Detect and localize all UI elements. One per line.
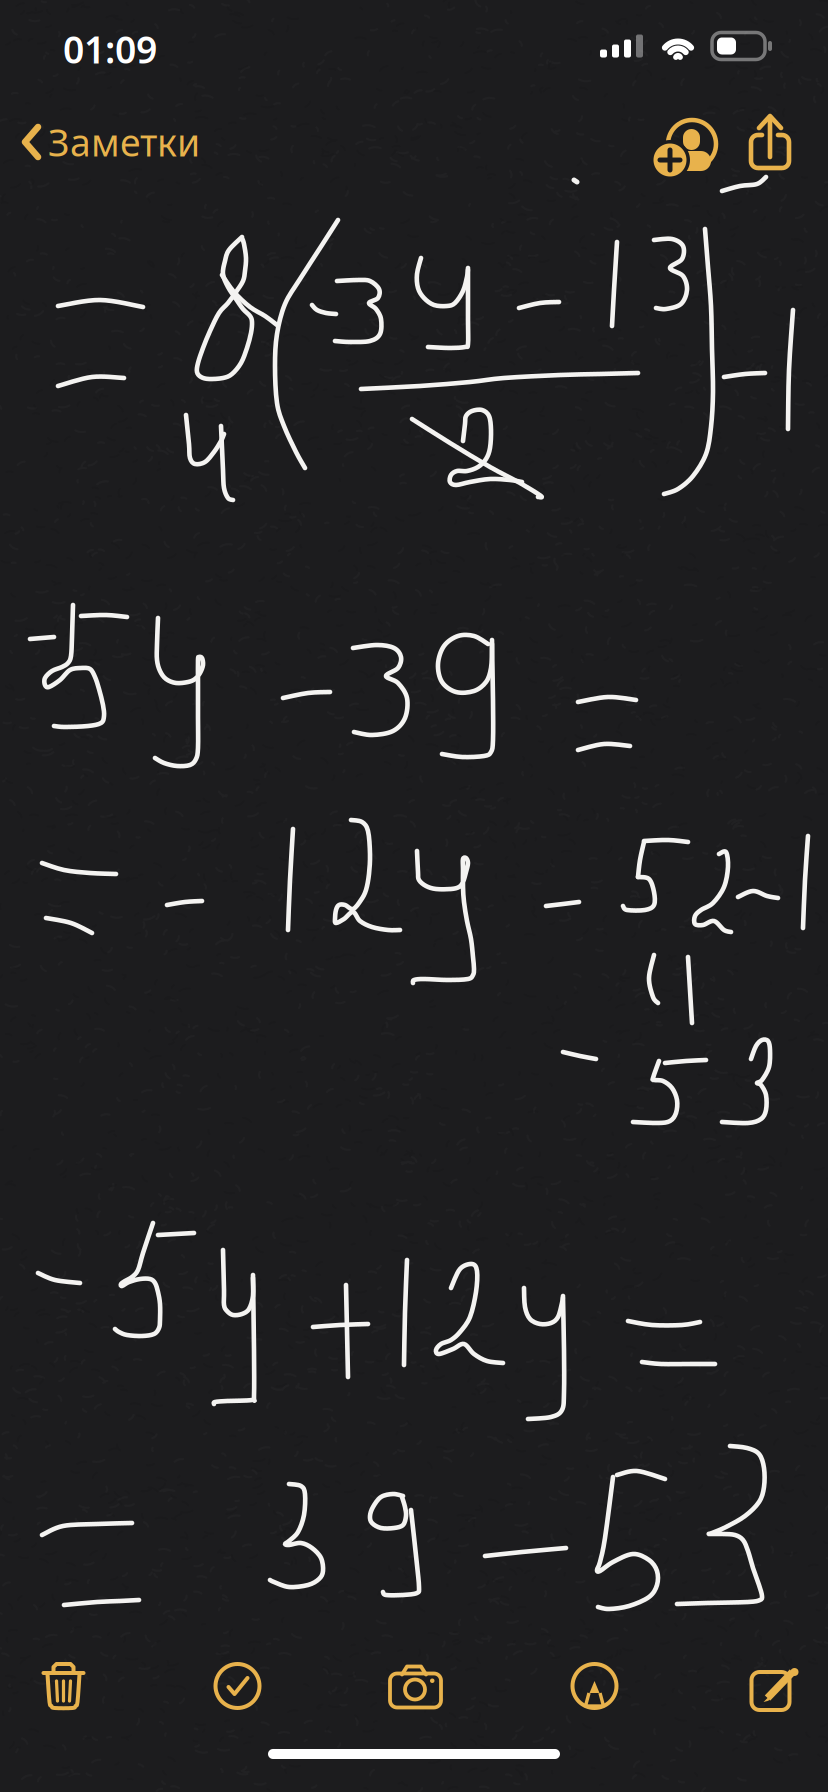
button[interactable]: Delete	[8, 1634, 118, 1738]
staticText: 01:09	[63, 24, 157, 74]
button[interactable]: Заметки	[24, 105, 212, 179]
staticText: Заметки	[48, 117, 200, 167]
button[interactable]: Share	[748, 113, 792, 171]
button[interactable]: Checklist	[182, 1634, 292, 1738]
button[interactable]: New Note	[722, 1634, 828, 1738]
button[interactable]: Markup	[539, 1634, 649, 1738]
button[interactable]: Camera	[360, 1634, 470, 1738]
button[interactable]: Add People	[640, 114, 708, 170]
